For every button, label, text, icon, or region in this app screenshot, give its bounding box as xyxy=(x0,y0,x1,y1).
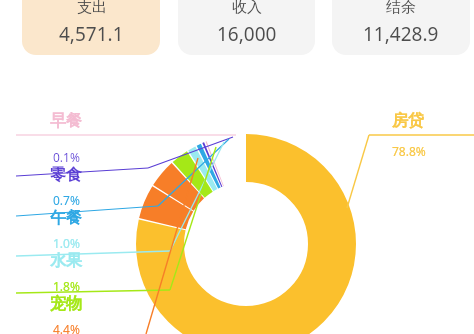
staticText: 房贷 xyxy=(392,111,424,131)
staticText: 结余 xyxy=(386,0,416,17)
staticText: 午餐 xyxy=(50,208,82,228)
staticText: 16,000 xyxy=(217,21,277,47)
staticText: 1.8% xyxy=(53,278,80,294)
staticText: 支出 xyxy=(77,0,107,17)
button[interactable]: 0.7% xyxy=(0,192,132,228)
staticText: 水果 xyxy=(50,251,82,271)
button[interactable]: 结余 xyxy=(332,0,470,55)
button[interactable]: 房贷 xyxy=(392,111,426,159)
staticText: 4.4% xyxy=(53,321,80,334)
staticText: 1.0% xyxy=(53,235,80,251)
staticText: 0.7% xyxy=(53,192,80,208)
staticText: 4,571.1 xyxy=(59,21,124,47)
staticText: 78.8% xyxy=(392,143,426,159)
button[interactable]: 0.1% xyxy=(0,149,132,185)
other: 支出分类环形图 xyxy=(0,0,474,334)
staticText: 0.1% xyxy=(53,149,80,165)
button[interactable]: 早餐 xyxy=(0,111,132,131)
staticText: 宠物 xyxy=(50,294,82,314)
staticText: 收入 xyxy=(232,0,262,17)
button[interactable]: 1.8% xyxy=(0,278,132,314)
button[interactable]: 4.4% xyxy=(0,321,132,334)
button[interactable]: 支出 xyxy=(22,0,160,55)
button[interactable]: 收入 xyxy=(178,0,315,55)
staticText: 11,428.9 xyxy=(363,21,439,47)
staticText: 早餐 xyxy=(50,111,82,131)
button[interactable]: 1.0% xyxy=(0,235,132,271)
staticText: 零食 xyxy=(50,165,82,185)
